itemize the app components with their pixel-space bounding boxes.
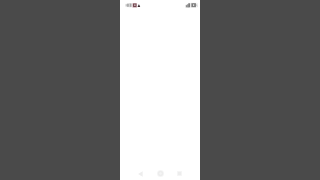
button[interactable]: Home	[153, 167, 167, 180]
button[interactable]: Recent apps	[172, 167, 186, 180]
button[interactable]: Back	[133, 167, 147, 180]
